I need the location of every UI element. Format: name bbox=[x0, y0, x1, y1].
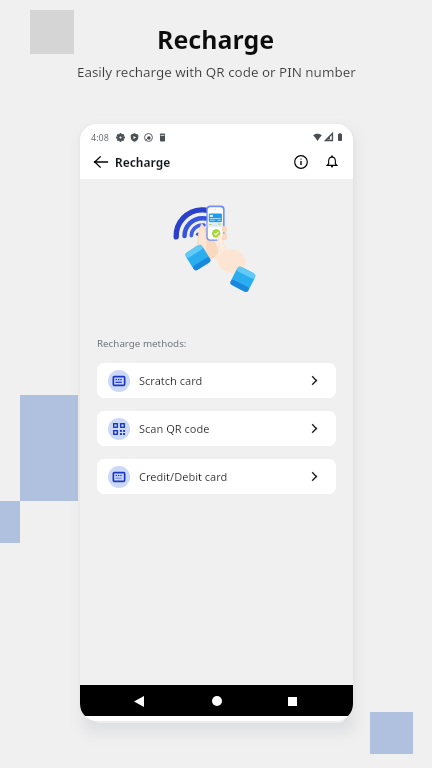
staticText: Credit/Debit card bbox=[139, 469, 228, 484]
button[interactable]: Recents bbox=[281, 690, 303, 712]
button[interactable]: Notifications bbox=[322, 152, 342, 172]
staticText: Recharge bbox=[157, 22, 275, 56]
button[interactable]: Scan QR code bbox=[97, 411, 336, 446]
staticText: Easily recharge with QR code or PIN numb… bbox=[77, 63, 356, 81]
button[interactable]: Back bbox=[128, 690, 150, 712]
button[interactable]: Back bbox=[91, 152, 111, 172]
staticText: Recharge methods: bbox=[97, 337, 187, 350]
button[interactable]: Credit/Debit card bbox=[97, 459, 336, 494]
button[interactable]: Home bbox=[206, 690, 228, 712]
staticText: Scan QR code bbox=[139, 421, 210, 436]
button[interactable]: Info bbox=[291, 152, 311, 172]
button[interactable]: Scratch card bbox=[97, 363, 336, 398]
staticText: Scratch card bbox=[139, 373, 203, 388]
staticText: 4:08 bbox=[91, 131, 109, 143]
staticText: Recharge bbox=[115, 154, 171, 170]
